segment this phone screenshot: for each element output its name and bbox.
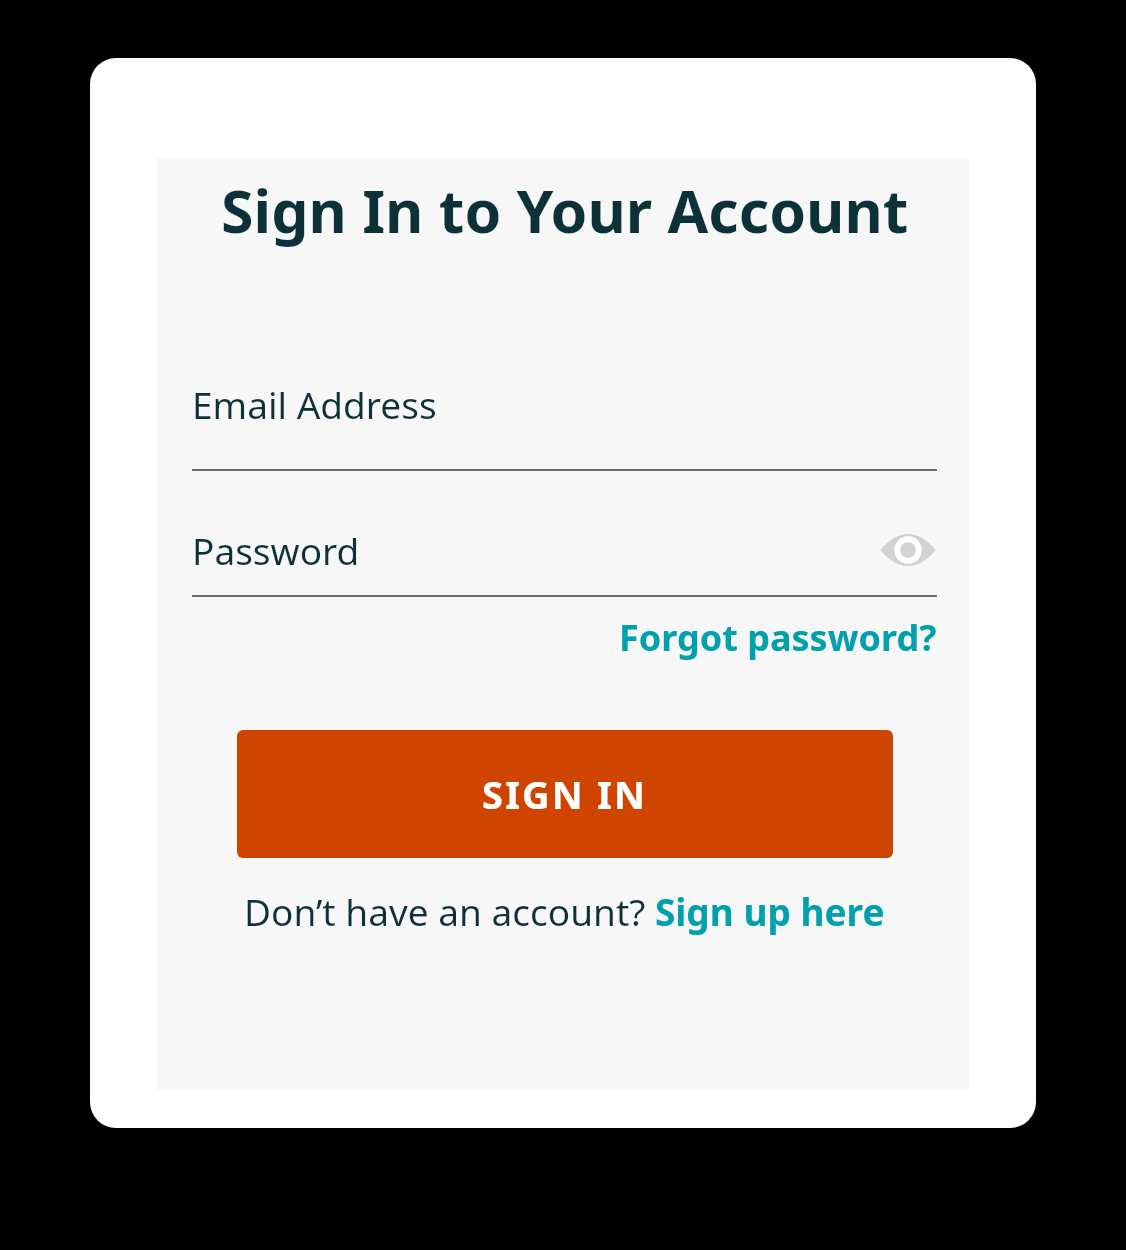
staticText: SIGN IN xyxy=(482,768,648,820)
button[interactable]: Forgot password? xyxy=(619,613,937,662)
button[interactable]: Password xyxy=(192,521,937,597)
button[interactable]: SIGN IN xyxy=(237,730,893,858)
button[interactable]: Email Address xyxy=(192,379,937,471)
staticText: Forgot password? xyxy=(619,613,937,662)
staticText: Password xyxy=(192,525,360,575)
staticText: Don’t have an account? Sign up here xyxy=(244,886,885,936)
staticText: Sign In to Your Account xyxy=(221,170,909,250)
button[interactable]: Don’t have an account? Sign up here xyxy=(244,886,885,936)
staticText: Email Address xyxy=(192,379,437,429)
button[interactable]: Show password xyxy=(879,521,937,579)
